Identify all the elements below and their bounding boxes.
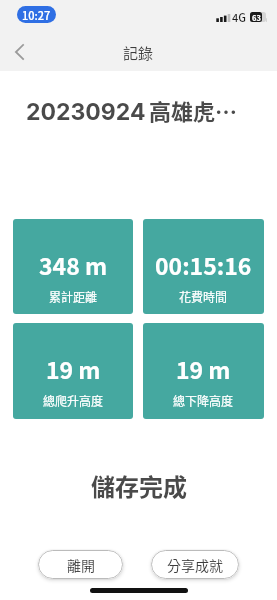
staticText: 離開: [67, 555, 95, 575]
staticText: 總下降高度: [173, 392, 234, 409]
button[interactable]: Back: [3, 36, 35, 68]
button[interactable]: 00:15:16: [143, 219, 264, 314]
staticText: 分享成就: [167, 555, 223, 575]
button[interactable]: 19 m: [143, 323, 264, 419]
staticText: 累計距離: [49, 288, 98, 305]
staticText: 記錄: [123, 42, 154, 64]
staticText: 348 m: [39, 248, 108, 281]
button[interactable]: 分享成就: [151, 550, 239, 579]
staticText: 00:15:16: [155, 248, 252, 281]
staticText: 19 m: [176, 352, 231, 385]
staticText: 總爬升高度: [43, 392, 104, 409]
button[interactable]: 348 m: [13, 219, 133, 314]
staticText: 高雄虎…: [149, 94, 238, 126]
staticText: 63: [252, 12, 261, 22]
staticText: 4G: [232, 9, 246, 25]
button[interactable]: 離開: [38, 550, 123, 579]
staticText: 20230924: [26, 98, 146, 126]
button[interactable]: 19 m: [13, 323, 133, 419]
staticText: 10:27: [22, 7, 51, 23]
staticText: 花費時間: [179, 288, 228, 305]
staticText: 儲存完成: [91, 468, 187, 500]
staticText: 19 m: [46, 352, 101, 385]
